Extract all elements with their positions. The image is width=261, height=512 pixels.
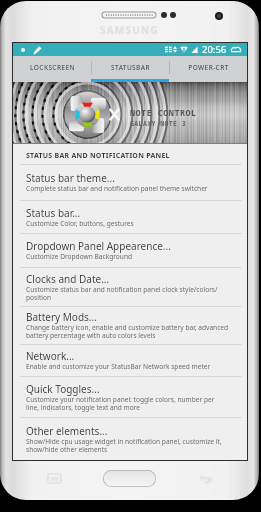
staticText: STATUSBAR [111,63,150,72]
button[interactable]: Back [198,471,214,485]
button[interactable]: Home [103,470,156,487]
button[interactable]: Other elements... [13,418,247,460]
button[interactable]: LOCKSCREEN [13,56,91,79]
staticText: POWER-CRT [188,63,229,72]
staticText: Clocks and Date... [26,272,110,286]
button[interactable]: Clocks and Date... [13,268,247,306]
staticText: Network... [26,349,75,363]
staticText: Customize Color, buttons, gestures [26,219,134,228]
staticText: Customize status bar and notification pa… [26,285,229,302]
staticText: LOCKSCREEN [30,63,75,72]
staticText: STATUS BAR AND NOTIFICATION PANEL [26,151,170,161]
staticText: Other elements... [26,424,108,438]
staticText: Customize your notification panel: toggl… [26,395,229,412]
button[interactable]: Dropdown Panel Appearence... [13,234,247,267]
staticText: GALAXY NOTE 3 [130,119,186,128]
staticText: Customize Dropdown Background [26,252,133,261]
staticText: SAMSUNG [100,23,159,37]
staticText: Dropdown Panel Appearence... [26,239,171,253]
staticText: Status bar theme... [26,171,115,185]
button[interactable]: POWER-CRT [170,56,247,79]
staticText: Change battery icon, enable and customiz… [26,323,229,340]
staticText: Quick Toggles... [26,382,100,396]
button[interactable]: Quick Toggles... [13,377,247,417]
staticText: 20:56 [202,43,227,56]
staticText: Status bar... [26,206,81,220]
staticText: Battery Mods... [26,310,97,324]
staticText: NOTE CONTROL [130,107,197,119]
button[interactable]: Menu [46,471,62,485]
staticText: Enable and customize your StatusBar Netw… [26,362,211,371]
staticText: Complete status bar and notification pan… [26,184,208,193]
button[interactable]: Status bar theme... [13,165,247,200]
button[interactable]: Network... [13,345,247,376]
button[interactable]: Battery Mods... [13,307,247,344]
button[interactable]: Status bar... [13,201,247,233]
staticText: Show/Hide cpu usage widget in notificati… [26,437,229,454]
button[interactable]: STATUSBAR [92,56,169,79]
